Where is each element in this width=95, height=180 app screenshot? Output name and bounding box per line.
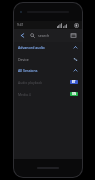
button[interactable]: Back (18, 31, 27, 40)
staticText: 9:41 (17, 23, 24, 27)
button[interactable]: All Sessions (14, 65, 82, 76)
staticText: Device (18, 57, 29, 62)
staticText: Media 4 (18, 92, 31, 97)
button[interactable]: Audio playback (14, 76, 82, 88)
button[interactable]: Menu (69, 31, 78, 40)
staticText: BT (72, 80, 76, 84)
staticText: Advanced audio (18, 45, 45, 50)
staticText: Audio playback (18, 80, 43, 85)
button[interactable]: search (30, 31, 69, 40)
button[interactable]: Media 4 (14, 88, 82, 100)
staticText: ON (72, 92, 77, 96)
staticText: All Sessions (18, 68, 38, 73)
button[interactable]: Advanced audio (14, 42, 82, 53)
button[interactable]: Device (14, 53, 82, 65)
staticText: search (38, 33, 50, 38)
